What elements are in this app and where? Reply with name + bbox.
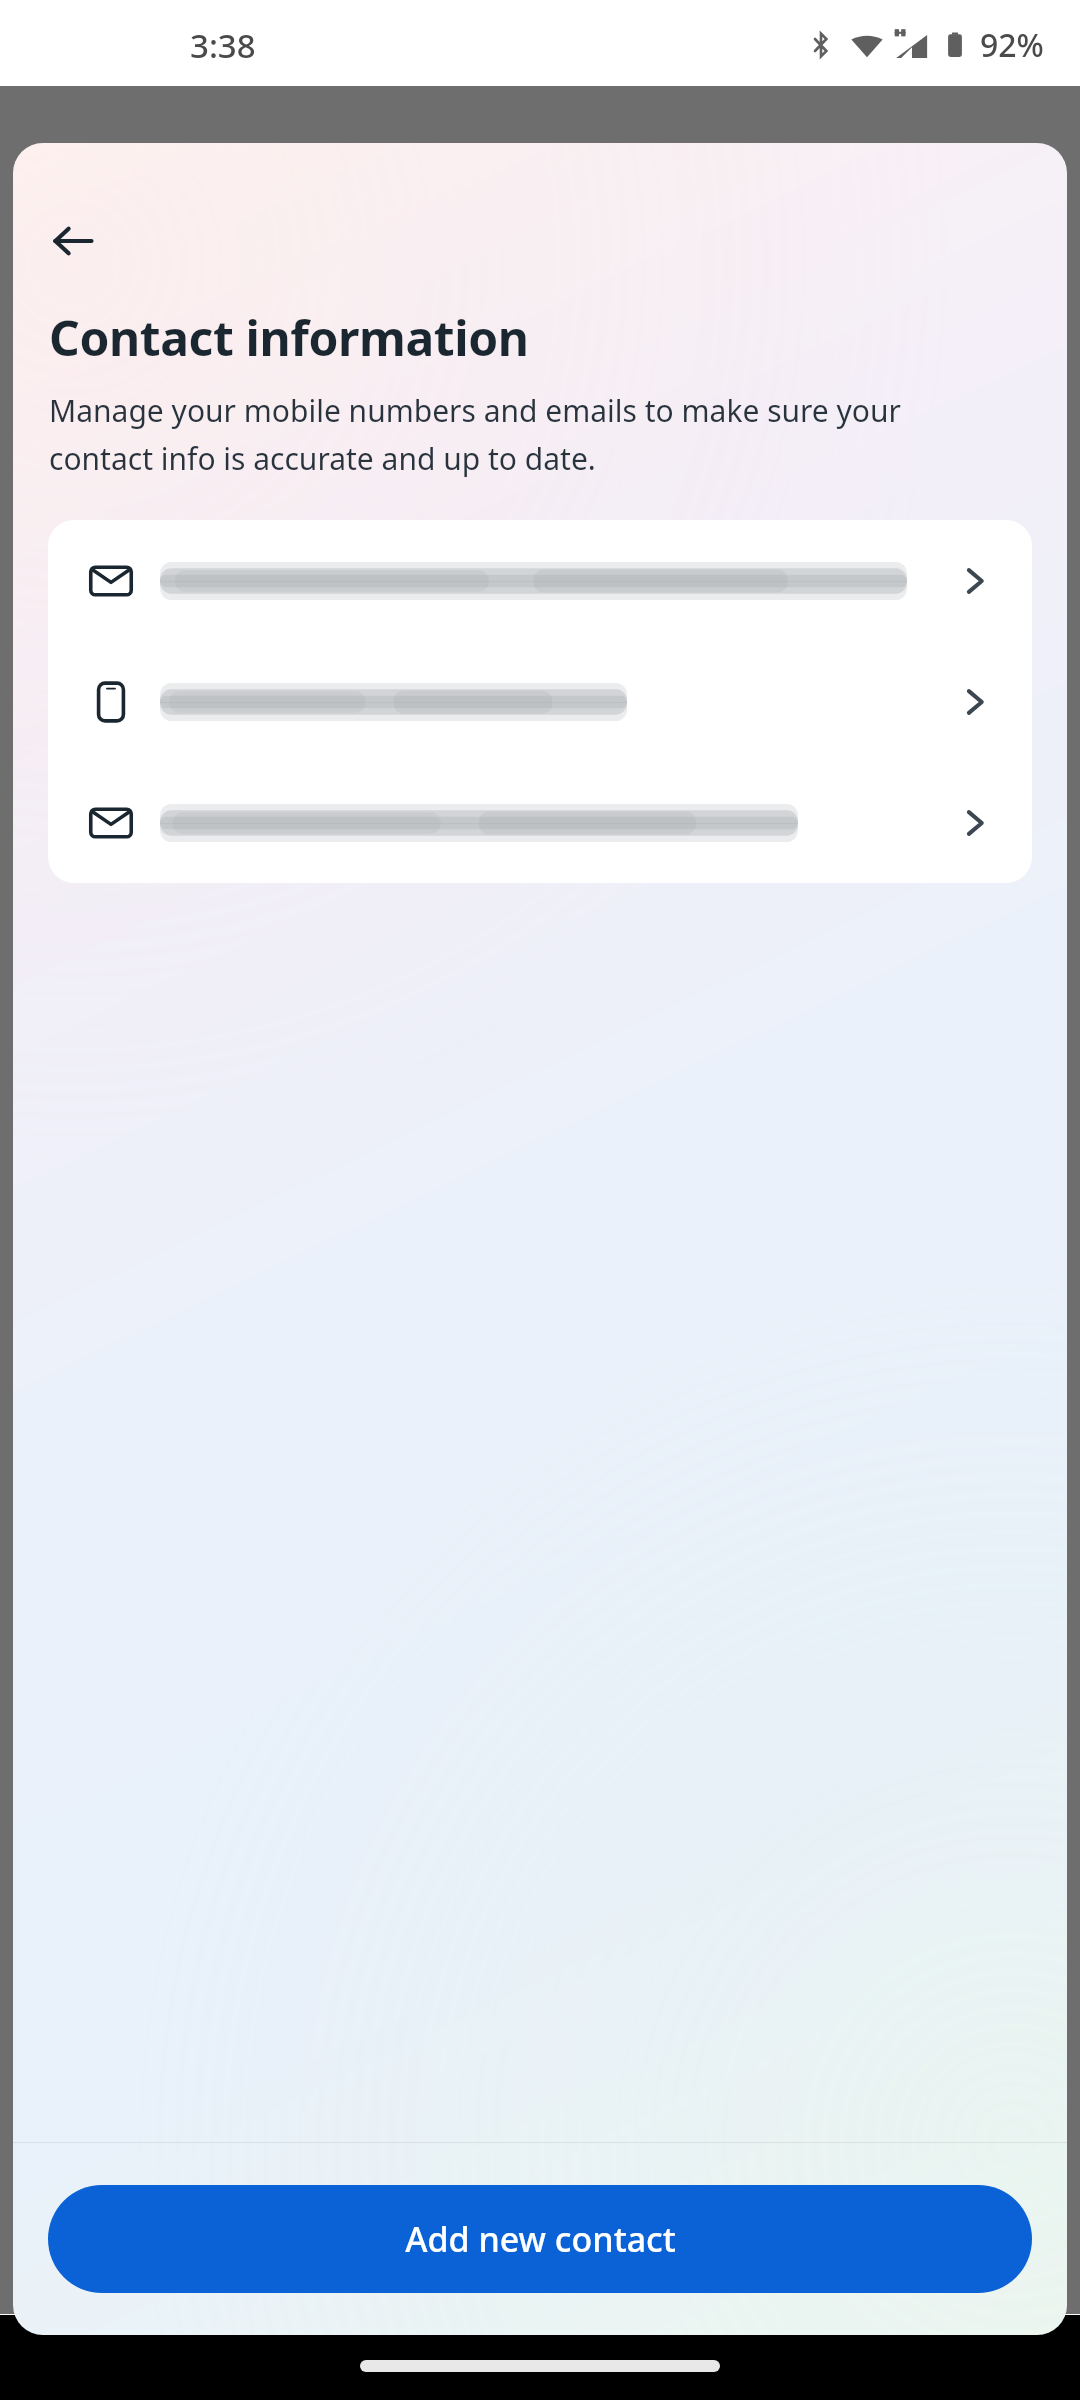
button[interactable]: [48, 641, 1032, 762]
button[interactable]: [48, 520, 1032, 641]
button[interactable]: Add new contact: [48, 2185, 1032, 2293]
button[interactable]: [48, 762, 1032, 883]
staticText: Add new contact: [405, 2216, 676, 2262]
button[interactable]: Back: [35, 203, 111, 279]
staticText: Contact information: [49, 305, 529, 370]
staticText: 3:38: [190, 23, 256, 68]
staticText: 92%: [980, 23, 1044, 67]
staticText: Manage your mobile numbers and emails to…: [49, 390, 1007, 478]
staticText: Audience and visibility: [48, 2308, 401, 2353]
